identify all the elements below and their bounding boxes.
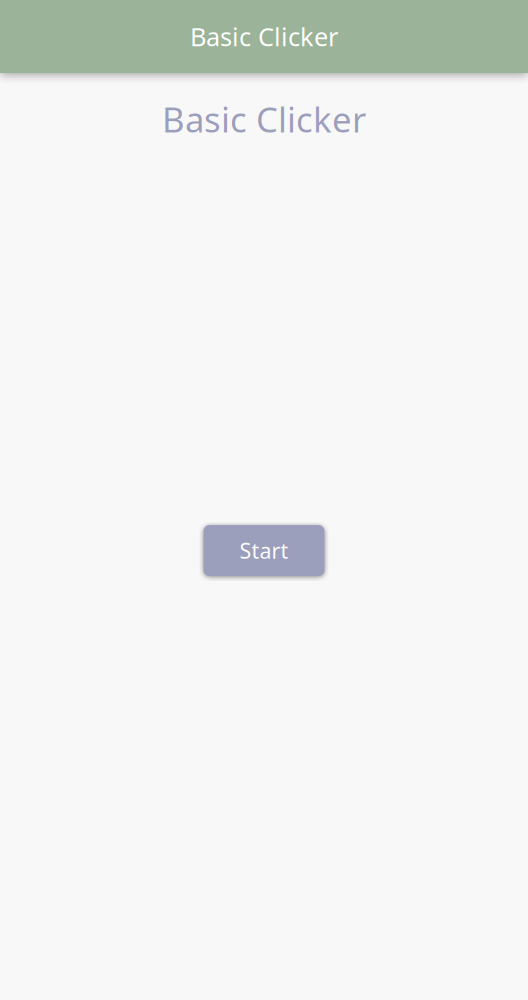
staticText: Basic Clicker — [190, 20, 338, 53]
staticText: Start — [239, 536, 288, 565]
staticText: Basic Clicker — [162, 96, 366, 142]
button[interactable]: Start — [203, 525, 324, 576]
